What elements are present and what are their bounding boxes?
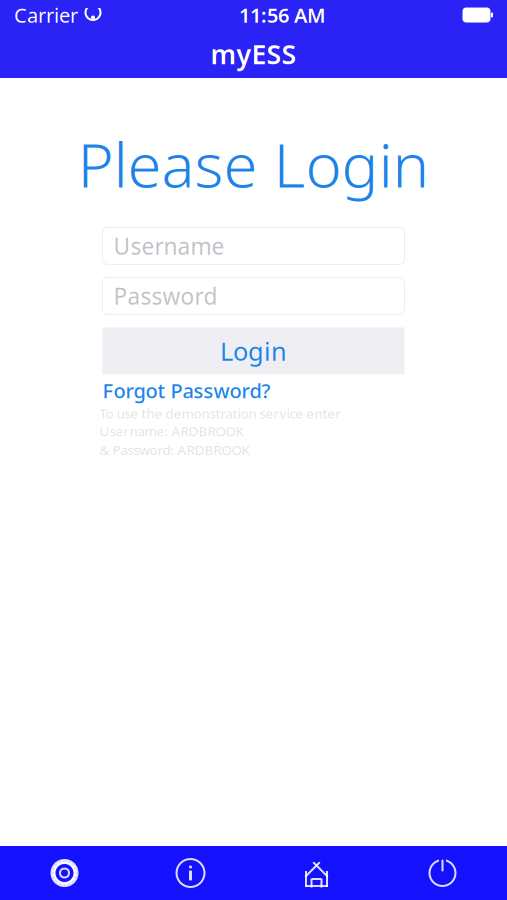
staticText: Forgot Password? [102, 377, 270, 404]
staticText: Login [220, 334, 287, 368]
button[interactable]: Settings [1, 846, 127, 900]
button[interactable]: Log out [379, 846, 505, 900]
button[interactable]: Login [102, 327, 404, 374]
staticText: myESS [210, 36, 296, 72]
staticText: To use the demonstration service enter U… [99, 404, 341, 440]
button[interactable]: Home [253, 846, 379, 900]
staticText: Password [113, 281, 217, 311]
staticText: & Password: ARDBROOK [99, 441, 249, 459]
staticText: Username [113, 231, 224, 261]
staticText: Please Login [77, 123, 429, 204]
staticText: Carrier [14, 2, 78, 28]
button[interactable]: Information [127, 846, 253, 900]
button[interactable]: Forgot Password? [102, 379, 404, 401]
staticText: 11:56 AM [239, 2, 326, 28]
